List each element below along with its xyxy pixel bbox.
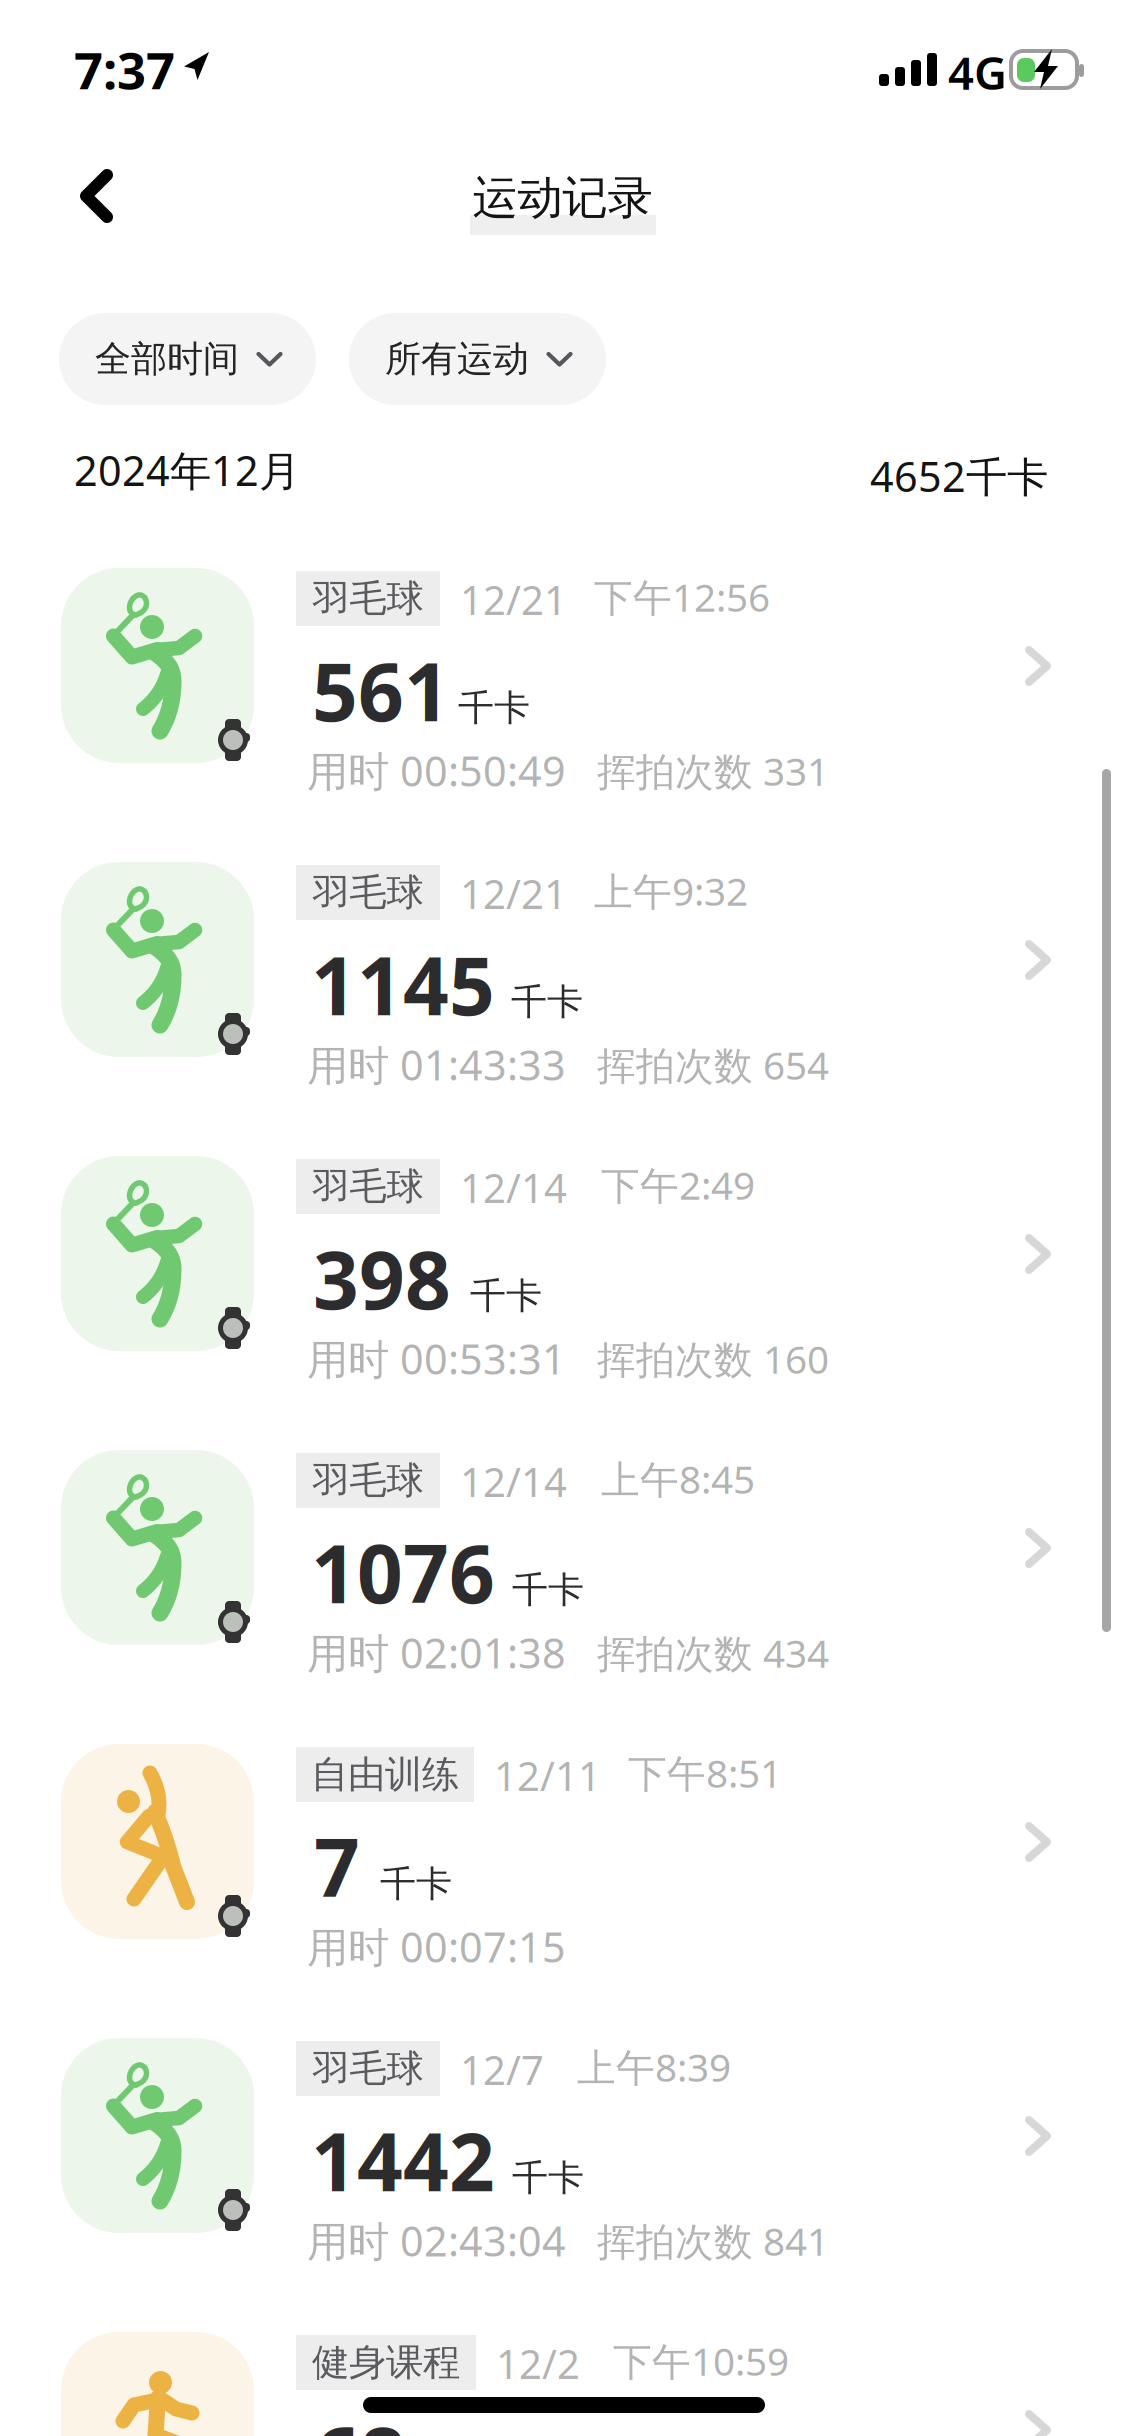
staticText: 12/14 — [460, 1161, 567, 1214]
staticText: 健身课程 — [312, 2340, 460, 2385]
staticText: 下午2:49 — [601, 1159, 755, 1210]
button[interactable]: 羽毛球 — [0, 850, 1125, 1144]
staticText: 12/2 — [496, 2337, 580, 2390]
staticText: 千卡 — [512, 2156, 584, 2200]
button[interactable]: 羽毛球 — [0, 1438, 1125, 1732]
staticText: 12/21 — [460, 867, 567, 920]
staticText: 7:37 — [74, 36, 175, 103]
staticText: 398 — [313, 1225, 451, 1331]
staticText: 用时 02:43:04 — [307, 2213, 566, 2268]
staticText: 1442 — [311, 2107, 495, 2213]
staticText: 羽毛球 — [312, 576, 423, 621]
staticText: 用时 00:07:15 — [307, 1919, 566, 1974]
button[interactable]: 全部时间 — [59, 313, 316, 405]
staticText: 1076 — [311, 1519, 495, 1625]
staticText: 千卡 — [512, 1568, 584, 1612]
staticText: 挥拍次数 434 — [597, 1627, 829, 1678]
staticText: 用时 02:01:38 — [307, 1625, 566, 1680]
staticText: 下午10:59 — [613, 2335, 789, 2386]
staticText: 68 — [314, 2401, 406, 2436]
staticText: 下午12:56 — [594, 571, 770, 622]
staticText: 千卡 — [458, 686, 530, 730]
button[interactable]: 羽毛球 — [0, 2026, 1125, 2320]
button[interactable]: 自由训练 — [0, 1732, 1125, 2026]
staticText: 运动记录 — [472, 170, 652, 226]
staticText: 上午8:45 — [601, 1453, 755, 1504]
staticText: 12/14 — [460, 1455, 567, 1508]
staticText: 1145 — [311, 931, 495, 1037]
staticText: 下午8:51 — [628, 1747, 782, 1798]
staticText: 羽毛球 — [312, 870, 423, 915]
staticText: 羽毛球 — [312, 2046, 423, 2091]
staticText: 2024年12月 — [74, 443, 300, 497]
staticText: 千卡 — [380, 1862, 452, 1906]
staticText: 挥拍次数 160 — [597, 1333, 829, 1384]
staticText: 7 — [314, 1813, 360, 1919]
staticText: 561 — [312, 637, 450, 743]
button[interactable]: 所有运动 — [349, 313, 606, 405]
staticText: 12/11 — [494, 1749, 601, 1802]
staticText: 用时 01:43:33 — [307, 1037, 566, 1092]
staticText: 用时 00:53:31 — [307, 1331, 566, 1386]
button[interactable]: 返回 — [0, 124, 120, 252]
staticText: 12/21 — [460, 573, 567, 626]
staticText: 挥拍次数 654 — [597, 1039, 829, 1090]
staticText: 用时 00:50:49 — [307, 743, 566, 798]
staticText: 挥拍次数 841 — [597, 2215, 829, 2266]
staticText: 上午9:32 — [594, 865, 748, 916]
button[interactable]: 运动记录 — [0, 124, 1125, 252]
button[interactable]: 健身课程 — [0, 2320, 1125, 2436]
staticText: 羽毛球 — [312, 1458, 423, 1503]
staticText: 所有运动 — [385, 337, 529, 381]
button[interactable]: 羽毛球 — [0, 556, 1125, 850]
staticText: 全部时间 — [95, 337, 239, 381]
staticText: 千卡 — [511, 980, 583, 1024]
staticText: 挥拍次数 331 — [597, 745, 829, 796]
staticText: 自由训练 — [311, 1752, 459, 1797]
staticText: 羽毛球 — [312, 1164, 423, 1209]
staticText: 上午8:39 — [577, 2041, 731, 2092]
staticText: 4G — [948, 42, 1007, 102]
button[interactable]: 羽毛球 — [0, 1144, 1125, 1438]
staticText: 4652千卡 — [870, 449, 1048, 503]
staticText: 12/7 — [460, 2043, 544, 2096]
staticText: 千卡 — [470, 1274, 542, 1318]
